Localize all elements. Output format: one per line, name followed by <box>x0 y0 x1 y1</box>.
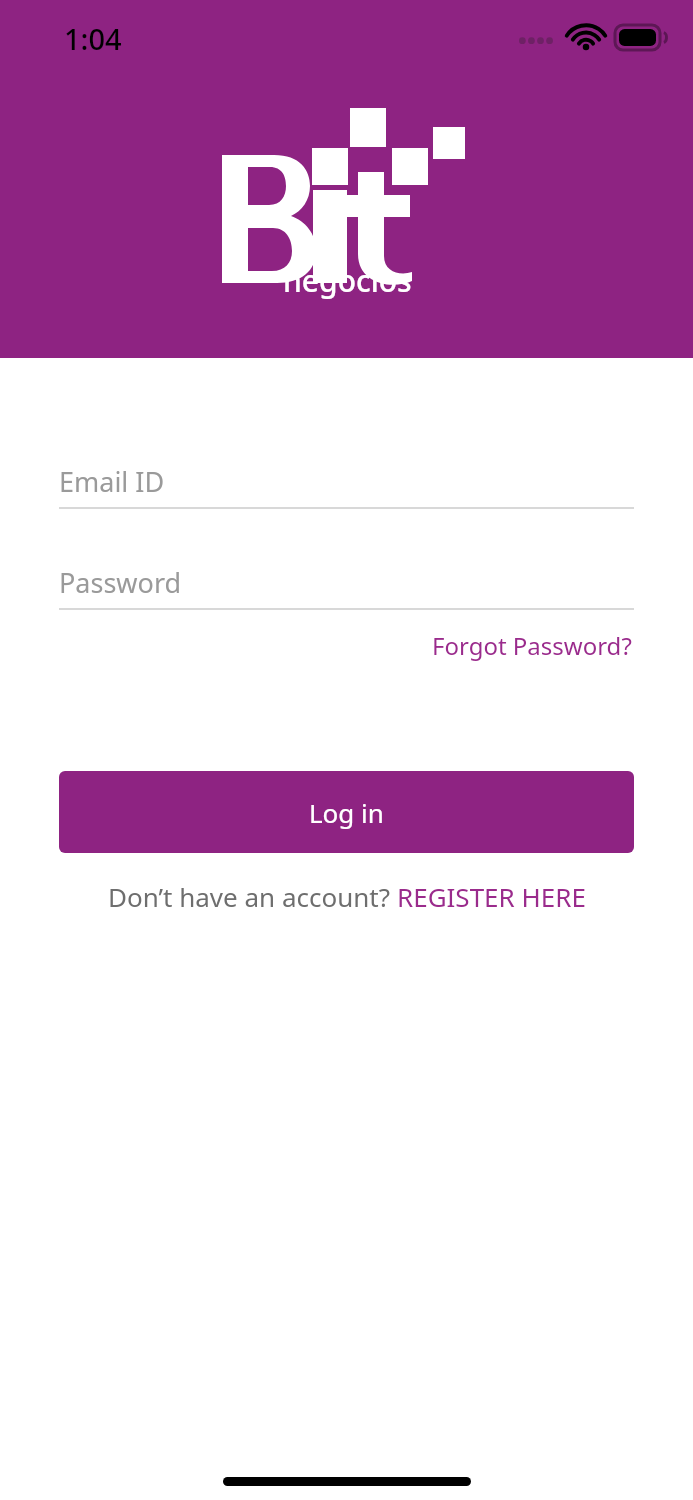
staticText: Don’t have an account? <box>108 879 397 914</box>
staticText: 1:04 <box>64 19 122 58</box>
staticText: Password <box>59 564 182 601</box>
staticText: Forgot Password? <box>432 629 632 662</box>
button[interactable]: REGISTER HERE <box>397 875 586 918</box>
button[interactable]: Password <box>59 556 634 610</box>
staticText: Log in <box>309 795 384 830</box>
button[interactable]: Log in <box>59 771 634 853</box>
staticText: Email ID <box>59 463 165 500</box>
button[interactable]: Forgot Password? <box>430 625 634 666</box>
button[interactable]: Email ID <box>59 455 634 509</box>
staticText: negocios <box>283 260 412 301</box>
staticText: REGISTER HERE <box>397 879 586 914</box>
